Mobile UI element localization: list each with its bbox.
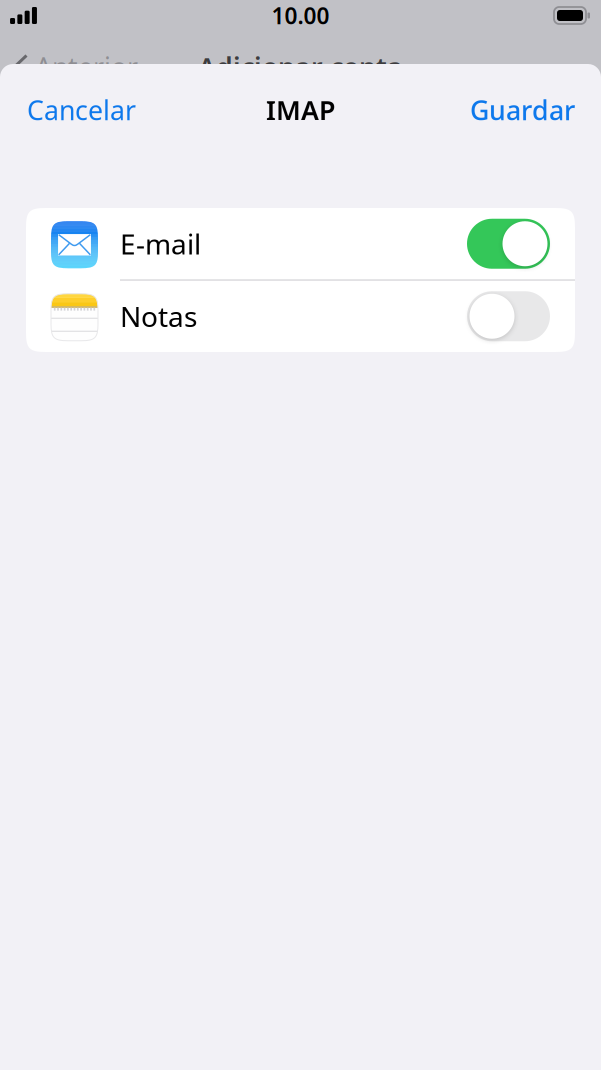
staticText: 10.00 [271, 0, 329, 30]
button[interactable]: E-mail [26, 208, 575, 279]
staticText: IMAP [266, 92, 335, 128]
staticText: Adicionar conta [198, 49, 403, 85]
staticText: Guardar [470, 92, 575, 128]
staticText: Anterior [35, 49, 138, 85]
button[interactable]: Anterior [12, 49, 138, 85]
staticText: Notas [120, 298, 197, 335]
button[interactable]: Notas [26, 280, 575, 352]
button[interactable]: Guardar [470, 80, 575, 140]
staticText: E-mail [120, 225, 201, 262]
button[interactable]: Cancelar [27, 80, 136, 140]
staticText: Cancelar [27, 92, 136, 128]
